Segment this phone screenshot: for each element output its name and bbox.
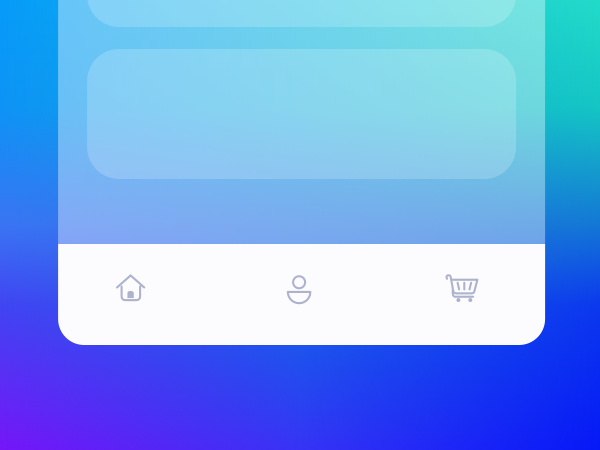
button[interactable]: Cart xyxy=(395,244,529,332)
button[interactable]: Home xyxy=(58,244,203,332)
button[interactable]: Profile xyxy=(203,244,395,332)
